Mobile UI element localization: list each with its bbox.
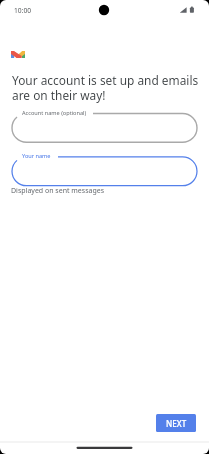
staticText: Displayed on sent messages	[11, 186, 105, 196]
staticText: Account name (optional)	[22, 109, 87, 117]
button[interactable]: Account name (optional)	[12, 105, 197, 143]
staticText: NEXT	[166, 418, 187, 429]
button[interactable]: NEXT	[156, 414, 196, 432]
button[interactable]: Your name	[12, 148, 197, 186]
staticText: 10:00	[14, 6, 32, 15]
staticText: Your name	[22, 152, 51, 160]
staticText: Your account is set up and emails are on…	[12, 72, 202, 104]
